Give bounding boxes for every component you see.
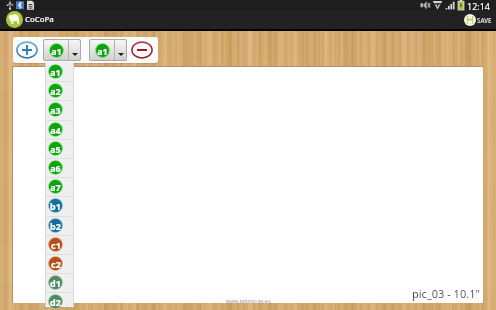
staticText: SAVE (477, 16, 492, 24)
button[interactable]: Drawing canvas (13, 67, 483, 303)
staticText: a4 (50, 124, 61, 136)
staticText: a7 (50, 181, 61, 193)
button[interactable]: a1 (90, 40, 126, 60)
button[interactable]: d1 (45, 273, 74, 292)
button[interactable]: SAVE (464, 14, 492, 26)
staticText: a1 (97, 45, 108, 57)
staticText: a1 (51, 45, 62, 57)
staticText: a5 (50, 143, 61, 155)
staticText: a2 (50, 85, 61, 97)
button[interactable]: a3 (45, 100, 74, 119)
staticText: pic_03 - 10.1" (412, 286, 480, 301)
button[interactable]: a6 (45, 158, 74, 177)
staticText: b2 (50, 220, 61, 232)
button[interactable]: a7 (45, 177, 74, 196)
button[interactable]: a1 (45, 62, 74, 81)
staticText: a6 (50, 162, 61, 174)
button[interactable]: a4 (45, 120, 74, 139)
staticText: d2 (50, 296, 61, 308)
button[interactable]: b2 (45, 216, 74, 235)
staticText: c2 (51, 258, 61, 270)
staticText: a1 (50, 66, 61, 78)
staticText: d1 (50, 277, 61, 289)
button[interactable]: c1 (45, 235, 74, 254)
button[interactable]: a5 (45, 139, 74, 158)
button[interactable]: CoCoPa (6, 11, 54, 28)
staticText: www.petrov-gv.eu (226, 297, 271, 304)
button[interactable]: a2 (45, 81, 74, 100)
button[interactable]: b1 (45, 196, 74, 215)
staticText: CoCoPa (25, 14, 54, 25)
button[interactable]: d2 (45, 292, 74, 310)
button[interactable]: Remove (131, 39, 153, 61)
button[interactable]: Add (16, 39, 38, 61)
staticText: b1 (50, 200, 61, 212)
staticText: c1 (51, 239, 61, 251)
staticText: 12:14 (467, 0, 491, 11)
button[interactable]: a1 (44, 40, 80, 60)
button[interactable]: c2 (45, 254, 74, 273)
staticText: a3 (50, 104, 61, 116)
